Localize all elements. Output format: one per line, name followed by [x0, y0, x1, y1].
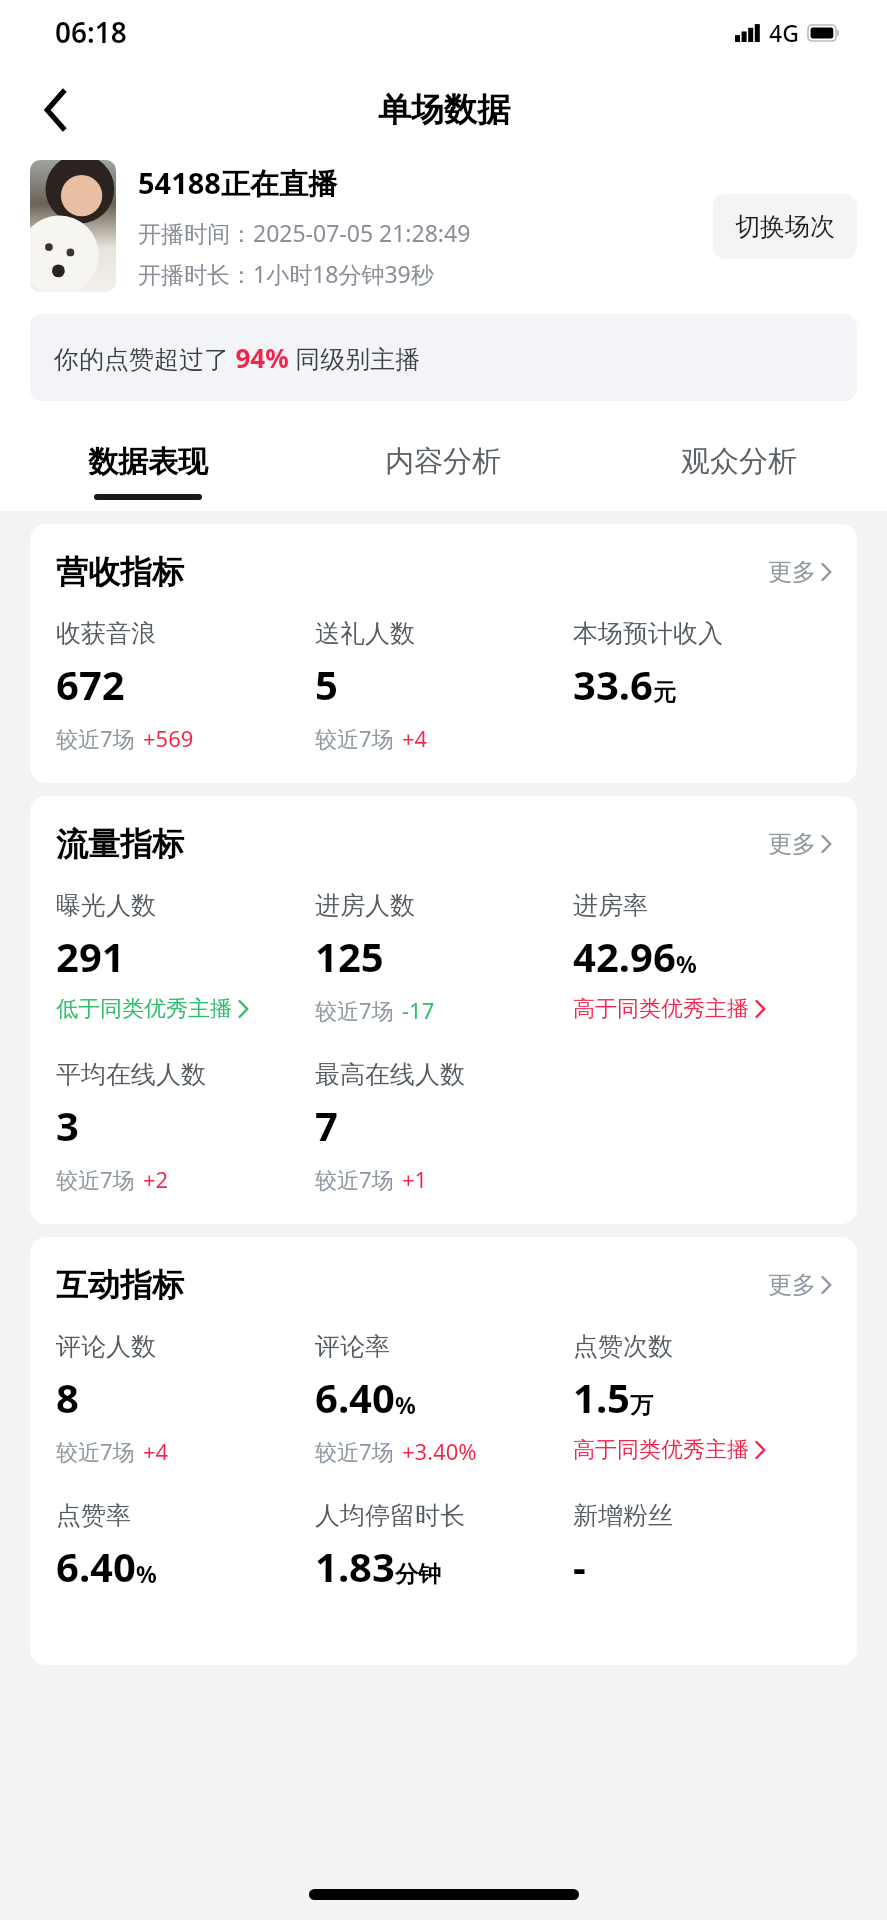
staticText: 8 — [56, 1370, 79, 1424]
staticText: 曝光人数 — [56, 890, 156, 921]
staticText: 较近7场 — [315, 1436, 394, 1466]
staticText: 低于同类优秀主播 — [56, 995, 232, 1023]
staticText: 4G — [769, 17, 799, 48]
staticText: 291 — [56, 929, 125, 983]
staticText: 更多 — [768, 829, 816, 859]
staticText: 最高在线人数 — [315, 1059, 465, 1090]
staticText: +2 — [143, 1164, 169, 1194]
staticText: % — [136, 1558, 157, 1589]
staticText: 6.40 — [315, 1370, 395, 1424]
staticText: 万 — [630, 1391, 653, 1420]
staticText: 较近7场 — [315, 1164, 394, 1194]
staticText: 进房率 — [573, 890, 648, 921]
staticText: 06:18 — [55, 13, 127, 51]
staticText: 评论人数 — [56, 1331, 156, 1362]
staticText: 营收指标 — [56, 552, 184, 592]
staticText: 672 — [56, 657, 125, 711]
staticText: 42.96 — [573, 929, 676, 983]
button[interactable]: 流量指标 — [56, 824, 831, 864]
staticText: 内容分析 — [385, 443, 501, 480]
staticText: +4 — [402, 723, 428, 753]
staticText: +3.40% — [402, 1436, 477, 1466]
staticText: 开播时长：1小时18分钟39秒 — [138, 258, 434, 289]
staticText: 送礼人数 — [315, 618, 415, 649]
staticText: 较近7场 — [56, 1436, 135, 1466]
button[interactable]: 内容分析 — [295, 431, 591, 511]
staticText: 点赞次数 — [573, 1331, 673, 1362]
staticText: 1.83 — [315, 1539, 395, 1593]
staticText: % — [676, 948, 697, 979]
button[interactable]: 营收指标 — [56, 552, 831, 592]
staticText: 较近7场 — [56, 1164, 135, 1194]
button[interactable]: 你的点赞超过了 94% 同级别主播 — [30, 314, 857, 401]
staticText: 流量指标 — [56, 824, 184, 864]
staticText: 分钟 — [395, 1560, 441, 1589]
staticText: +569 — [143, 723, 194, 753]
staticText: 评论率 — [315, 1331, 390, 1362]
staticText: +1 — [402, 1164, 428, 1194]
button[interactable]: Back — [26, 80, 86, 140]
staticText: 33.6 — [573, 657, 653, 711]
staticText: 高于同类优秀主播 — [573, 1436, 749, 1464]
staticText: 互动指标 — [56, 1265, 184, 1305]
button[interactable]: 数据表现 — [0, 431, 295, 511]
staticText: 单场数据 — [378, 89, 510, 131]
staticText: 新增粉丝 — [573, 1500, 673, 1531]
staticText: 5 — [315, 657, 338, 711]
staticText: 54188正在直播 — [138, 163, 337, 203]
staticText: 较近7场 — [56, 723, 135, 753]
staticText: % — [395, 1389, 416, 1420]
button[interactable] — [30, 160, 116, 292]
staticText: 人均停留时长 — [315, 1500, 465, 1531]
staticText: 进房人数 — [315, 890, 415, 921]
staticText: 更多 — [768, 557, 816, 587]
staticText: 较近7场 — [315, 723, 394, 753]
staticText: 平均在线人数 — [56, 1059, 206, 1090]
staticText: 你的点赞超过了 94% 同级别主播 — [54, 340, 421, 375]
staticText: 收获音浪 — [56, 618, 156, 649]
staticText: 切换场次 — [735, 211, 835, 242]
staticText: 较近7场 — [315, 995, 394, 1025]
staticText: 更多 — [768, 1270, 816, 1300]
staticText: 本场预计收入 — [573, 618, 723, 649]
staticText: 6.40 — [56, 1539, 136, 1593]
button[interactable]: 切换场次 — [713, 194, 857, 259]
staticText: -17 — [402, 995, 435, 1025]
staticText: 开播时间：2025-07-05 21:28:49 — [138, 217, 471, 248]
staticText: +4 — [143, 1436, 169, 1466]
staticText: 观众分析 — [681, 443, 797, 480]
button[interactable]: 观众分析 — [591, 431, 887, 511]
button[interactable]: 互动指标 — [56, 1265, 831, 1305]
staticText: 7 — [315, 1098, 338, 1152]
staticText: 数据表现 — [88, 443, 208, 481]
staticText: 125 — [315, 929, 384, 983]
staticText: 1.5 — [573, 1370, 630, 1424]
staticText: 3 — [56, 1098, 79, 1152]
staticText: - — [573, 1539, 586, 1593]
staticText: 点赞率 — [56, 1500, 131, 1531]
staticText: 元 — [653, 678, 676, 707]
staticText: 高于同类优秀主播 — [573, 995, 749, 1023]
